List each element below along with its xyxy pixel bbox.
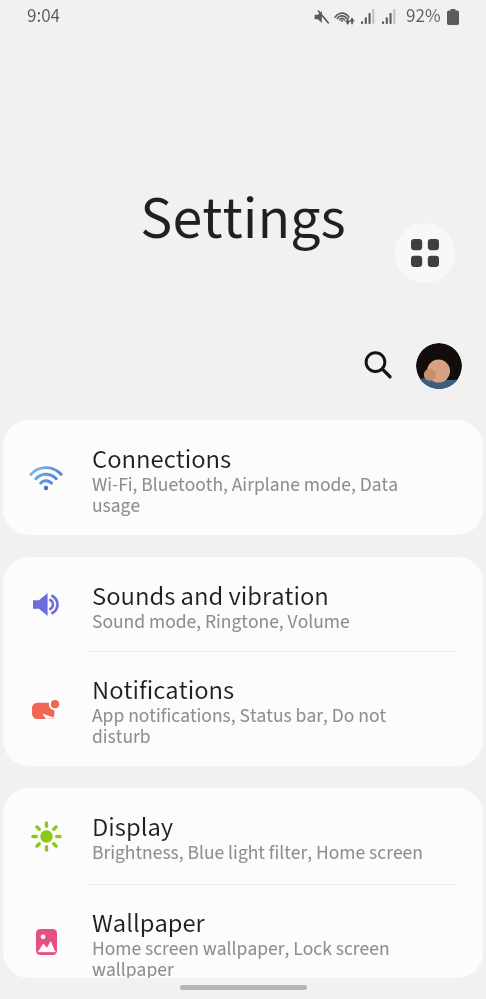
button[interactable]: Sounds and vibration [3, 557, 483, 651]
staticText: 92% [406, 3, 441, 30]
button[interactable]: Connections [3, 420, 483, 535]
button[interactable]: Notifications [3, 651, 483, 766]
staticText: App notifications, Status bar, Do not di… [92, 702, 447, 751]
staticText: Wallpaper [92, 905, 205, 943]
button[interactable]: Wallpaper [3, 884, 483, 978]
staticText: Settings [0, 177, 486, 262]
button[interactable]: Display [3, 788, 483, 884]
staticText: Sounds and vibration [92, 578, 329, 616]
button[interactable]: Apps grid [395, 223, 455, 283]
staticText: Display [92, 809, 174, 847]
button[interactable]: Account [416, 343, 462, 389]
staticText: Sound mode, Ringtone, Volume [92, 608, 350, 636]
staticText: Notifications [92, 672, 235, 710]
button[interactable]: Search [355, 342, 401, 388]
staticText: Home screen wallpaper, Lock screen wallp… [92, 935, 447, 978]
staticText: Connections [92, 441, 232, 479]
staticText: Brightness, Blue light filter, Home scre… [92, 839, 423, 867]
staticText: 9:04 [27, 3, 61, 30]
staticText: Wi-Fi, Bluetooth, Airplane mode, Data us… [92, 471, 447, 520]
